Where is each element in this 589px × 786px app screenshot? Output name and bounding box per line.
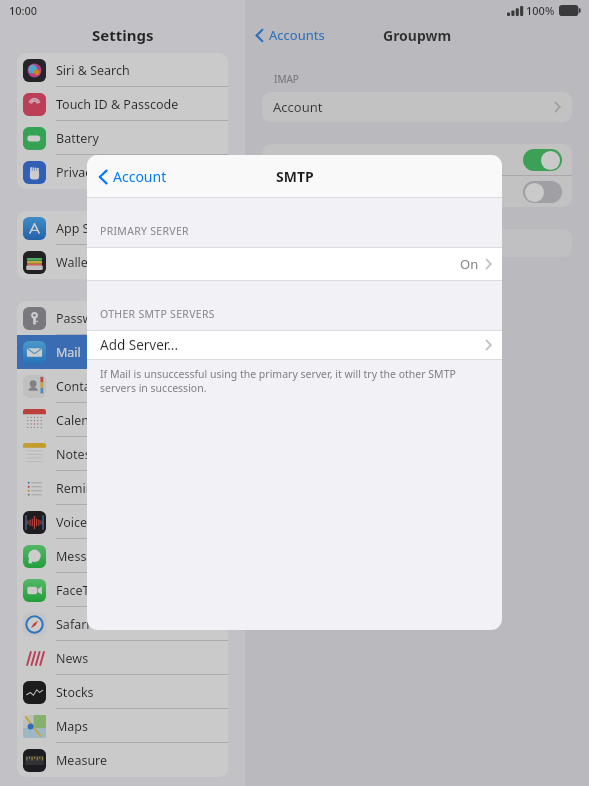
- staticText: Battery: [56, 130, 99, 147]
- button[interactable]: Reminders: [17, 471, 228, 505]
- button[interactable]: Mail: [17, 335, 228, 369]
- button[interactable]: FaceTime: [17, 573, 228, 607]
- staticText: Privacy: [56, 164, 98, 181]
- staticText: SMTP: [276, 167, 314, 186]
- staticText: IMAP: [274, 72, 299, 86]
- staticText: Add Server...: [100, 336, 179, 354]
- button[interactable]: Accounts: [255, 26, 325, 44]
- staticText: App Store: [56, 220, 114, 237]
- staticText: If Mail is unsuccessful using the primar…: [100, 367, 489, 395]
- staticText: News: [56, 650, 89, 667]
- button[interactable]: Notes: [17, 437, 228, 471]
- button[interactable]: Maps: [17, 709, 228, 743]
- button[interactable]: Toggle on: [262, 144, 572, 175]
- button[interactable]: Messages: [17, 539, 228, 573]
- staticText: Settings: [92, 25, 154, 45]
- staticText: Account: [273, 98, 323, 116]
- staticText: Accounts: [269, 26, 325, 44]
- staticText: Groupwm: [383, 26, 452, 45]
- button[interactable]: [262, 229, 572, 257]
- staticText: Passwords: [56, 310, 119, 327]
- staticText: Voice Memos: [56, 514, 134, 531]
- button[interactable]: Touch ID & Passcode: [17, 87, 228, 121]
- staticText: On: [460, 255, 479, 273]
- staticText: Notes: [56, 446, 91, 463]
- staticText: Safari: [56, 616, 90, 633]
- button[interactable]: Toggle off: [262, 176, 572, 207]
- staticText: Maps: [56, 718, 89, 735]
- button[interactable]: Stocks: [17, 675, 228, 709]
- button[interactable]: Calendar: [17, 403, 228, 437]
- other: Toggle off: [523, 181, 562, 203]
- button[interactable]: Wallet & Apple Pay: [17, 245, 228, 279]
- staticText: Calendar: [56, 412, 109, 429]
- other: Toggle on: [523, 149, 562, 171]
- button[interactable]: App Store: [17, 211, 228, 245]
- staticText: 10:00: [9, 3, 38, 18]
- button[interactable]: Contacts: [17, 369, 228, 403]
- staticText: Siri & Search: [56, 62, 130, 79]
- button[interactable]: Passwords: [17, 301, 228, 335]
- staticText: 100%: [526, 3, 555, 18]
- button[interactable]: Voice Memos: [17, 505, 228, 539]
- staticText: Stocks: [56, 684, 94, 701]
- button[interactable]: Measure: [17, 743, 228, 777]
- staticText: Contacts: [56, 378, 108, 395]
- button[interactable]: Privacy: [17, 155, 228, 189]
- button[interactable]: Battery: [17, 121, 228, 155]
- staticText: Reminders: [56, 480, 120, 497]
- staticText: PRIMARY SERVER: [100, 224, 189, 238]
- staticText: Messages: [56, 548, 115, 565]
- staticText: FaceTime: [56, 582, 112, 599]
- staticText: Wallet & Apple Pay: [56, 254, 166, 271]
- staticText: OTHER SMTP SERVERS: [100, 307, 215, 321]
- staticText: Touch ID & Passcode: [56, 96, 179, 113]
- button[interactable]: Safari: [17, 607, 228, 641]
- button[interactable]: On: [87, 247, 502, 281]
- staticText: Measure: [56, 752, 108, 769]
- button[interactable]: News: [17, 641, 228, 675]
- button[interactable]: Add Server...: [87, 330, 502, 360]
- staticText: Mail: [56, 344, 81, 361]
- button[interactable]: Account: [98, 167, 167, 186]
- staticText: Account: [113, 167, 167, 186]
- button[interactable]: Siri & Search: [17, 53, 228, 87]
- button[interactable]: Account: [262, 92, 572, 122]
